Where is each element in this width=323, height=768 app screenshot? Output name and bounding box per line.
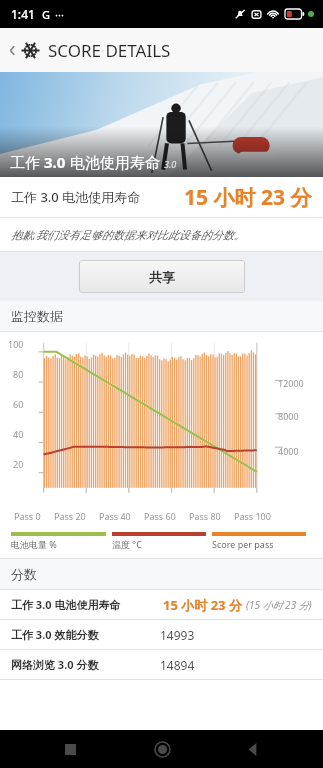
button[interactable]: Recent apps [48, 730, 92, 768]
staticText: G [42, 7, 50, 22]
staticText: 14993 [160, 627, 195, 643]
staticText: ··· [55, 7, 64, 22]
staticText: 工作 3.0 电池使用寿命 [11, 188, 141, 206]
staticText: Pass 100 [234, 510, 271, 522]
staticText: 14894 [160, 657, 195, 673]
staticText: 监控数据 [11, 308, 63, 324]
staticText: (15 小时 23 分) [246, 598, 312, 612]
staticText: 共享 [149, 269, 175, 285]
staticText: 80 [13, 368, 24, 380]
staticText: 工作 [10, 152, 44, 172]
staticText: 网络浏览 3.0 分数 [11, 657, 99, 672]
button[interactable]: 工作 3.0 效能分数 [0, 620, 323, 649]
staticText: 工作 3.0 电池使用寿命 [11, 597, 121, 612]
staticText: 8000 [278, 410, 299, 422]
staticText: 60 [13, 398, 24, 410]
staticText: 温度 °C [112, 538, 142, 550]
staticText: 电池电量 % [11, 538, 57, 550]
staticText: 4000 [278, 445, 299, 457]
button[interactable]: Back [0, 28, 323, 72]
staticText: 3.0 [44, 152, 66, 172]
staticText: SCORE DETAILS [48, 39, 171, 62]
button[interactable]: Home [140, 730, 184, 768]
staticText: 40 [13, 428, 24, 440]
button[interactable]: Back [231, 730, 275, 768]
staticText: 1:41 [11, 6, 35, 22]
staticText: Pass 0 [14, 510, 41, 522]
button[interactable]: 共享 [79, 260, 245, 293]
button[interactable]: 工作 3.0 电池使用寿命 [0, 590, 323, 619]
staticText: 100 [8, 338, 24, 350]
staticText: 工作 3.0 效能分数 [11, 627, 99, 642]
staticText: Pass 40 [99, 510, 131, 522]
staticText: Score per pass [212, 538, 274, 550]
staticText: 抱歉,我们没有足够的数据来对比此设备的分数。 [11, 227, 245, 242]
staticText: 15 小时 23 分 [184, 183, 312, 212]
staticText: 12000 [278, 377, 304, 389]
staticText: 3.0 [164, 158, 177, 170]
button[interactable]: 工作 3.0 电池使用寿命 [0, 177, 323, 217]
button[interactable]: 网络浏览 3.0 分数 [0, 650, 323, 679]
staticText: 分数 [11, 566, 37, 582]
staticText: Pass 20 [54, 510, 86, 522]
other: Back [5, 43, 20, 58]
staticText: 15 小时 23 分 [163, 596, 242, 614]
staticText: 电池使用寿命 [66, 152, 160, 172]
staticText: 20 [13, 458, 24, 470]
staticText: Pass 60 [144, 510, 176, 522]
staticText: Pass 80 [189, 510, 221, 522]
